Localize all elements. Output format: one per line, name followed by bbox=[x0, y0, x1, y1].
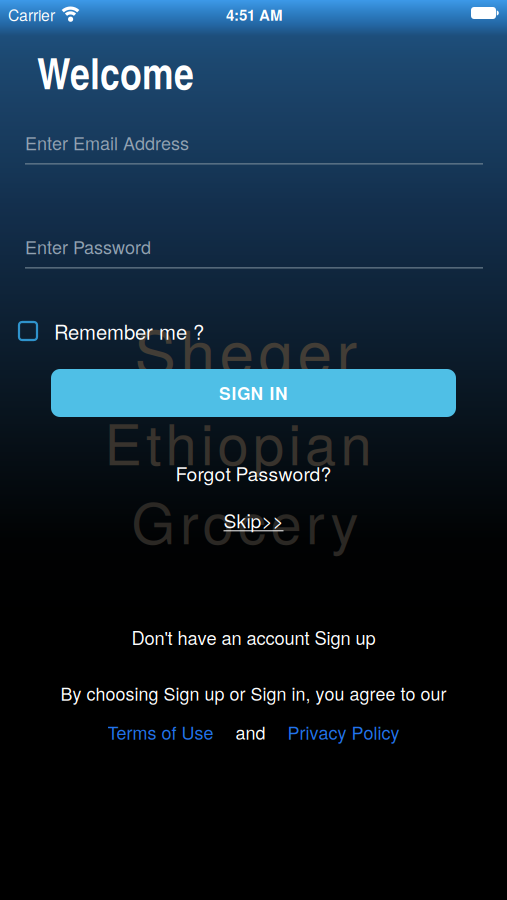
button[interactable]: SIGN IN bbox=[51, 369, 456, 417]
staticText: SIGN IN bbox=[219, 381, 288, 405]
staticText: Enter Password bbox=[25, 234, 151, 259]
button[interactable]: Forgot Password? bbox=[175, 459, 331, 487]
staticText: Enter Email Address bbox=[25, 130, 189, 155]
staticText: Sheger bbox=[134, 305, 357, 393]
staticText: Privacy Policy bbox=[287, 719, 399, 745]
button[interactable]: Remember me bbox=[0, 316, 507, 345]
button[interactable]: Privacy Policy bbox=[287, 719, 399, 745]
staticText: Remember me ? bbox=[54, 316, 204, 345]
button[interactable]: Enter Email Address bbox=[25, 132, 483, 161]
staticText: Grocery bbox=[131, 480, 358, 560]
button[interactable]: Skip>> bbox=[223, 506, 283, 534]
staticText: 4:51 AM bbox=[226, 4, 283, 25]
staticText: Forgot Password? bbox=[175, 459, 331, 487]
button[interactable]: Enter Password bbox=[25, 236, 483, 265]
staticText: Ethiopian bbox=[104, 401, 371, 481]
button[interactable]: Terms of Use bbox=[107, 719, 213, 745]
staticText: Welcome bbox=[37, 41, 194, 103]
staticText: Terms of Use bbox=[107, 719, 213, 745]
staticText: and bbox=[235, 719, 265, 745]
staticText: Don't have an account Sign up bbox=[131, 624, 375, 650]
staticText: By choosing Sign up or Sign in, you agre… bbox=[60, 680, 446, 706]
button[interactable]: Don't have an account Sign up bbox=[131, 624, 375, 650]
staticText: Carrier bbox=[8, 3, 55, 26]
staticText: Skip>> bbox=[223, 506, 283, 534]
